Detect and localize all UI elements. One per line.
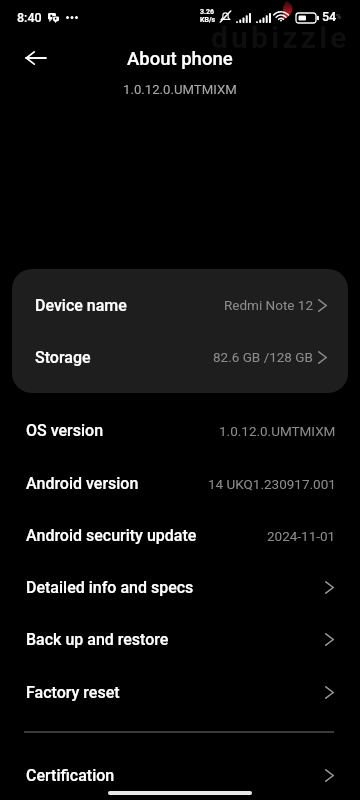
staticText: 82.6 GB /128 GB [213,349,313,365]
staticText: Device name [35,296,127,315]
staticText: Factory reset [26,683,120,702]
staticText: About phone [127,48,233,70]
button[interactable]: OS version [0,404,360,457]
staticText: Android security update [26,526,197,545]
staticText: Redmi Note 12 [224,297,313,313]
staticText: 54 [322,9,337,24]
staticText: 14 UKQ1.230917.001 [208,476,336,492]
staticText: 1.0.12.0.UMTMIXM [219,423,336,439]
staticText: OS version [26,421,104,440]
button[interactable]: Android security update [0,509,360,562]
button[interactable]: Android version [0,457,360,510]
staticText: Storage [35,348,91,367]
staticText: 1.0.12.0.UMTMIXM [123,82,237,97]
button[interactable]: Certification [0,749,360,800]
staticText: Android version [26,474,139,493]
staticText: Certification [26,766,115,785]
button[interactable]: Detailed info and specs [0,561,360,614]
staticText: 2024-11-01 [267,528,336,544]
staticText: Detailed info and specs [26,578,194,597]
button[interactable]: Device name [12,279,348,331]
staticText: 3.26 [200,8,215,16]
staticText: Back up and restore [26,630,169,649]
button[interactable]: Back [18,40,54,76]
staticText: % [336,13,342,21]
button[interactable]: Back up and restore [0,613,360,666]
staticText: 8:40 [17,10,42,25]
button[interactable]: Factory reset [0,666,360,719]
staticText: dubizzle [211,20,350,55]
staticText: KB/s [200,16,216,24]
button[interactable]: Storage [12,331,348,383]
